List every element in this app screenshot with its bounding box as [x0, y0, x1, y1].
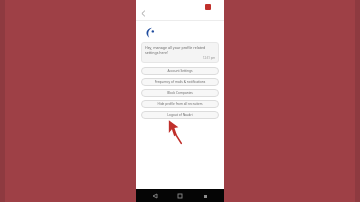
staticText: Hide profile from all recruiters: [141, 102, 219, 106]
staticText: Account Settings: [141, 69, 219, 73]
button[interactable]: Back: [138, 8, 148, 18]
button[interactable]: Recent apps: [199, 190, 211, 202]
staticText: Block Companies: [141, 91, 219, 95]
button[interactable]: Back: [149, 190, 161, 202]
staticText: Hey, manage all your profile related set…: [145, 45, 215, 55]
staticText: Frequency of mails & notifications: [141, 80, 219, 84]
staticText: 12:31 pm: [145, 56, 215, 60]
button[interactable]: Block Companies: [141, 89, 219, 97]
button[interactable]: Home: [174, 190, 186, 202]
button[interactable]: Hey, manage all your profile related set…: [141, 42, 219, 63]
button[interactable]: Hide profile from all recruiters: [141, 100, 219, 108]
button[interactable]: Frequency of mails & notifications: [141, 78, 219, 86]
button[interactable]: Account Settings: [141, 67, 219, 75]
staticText: Logout of Naukri: [141, 113, 219, 117]
button[interactable]: Logout of Naukri: [141, 111, 219, 119]
